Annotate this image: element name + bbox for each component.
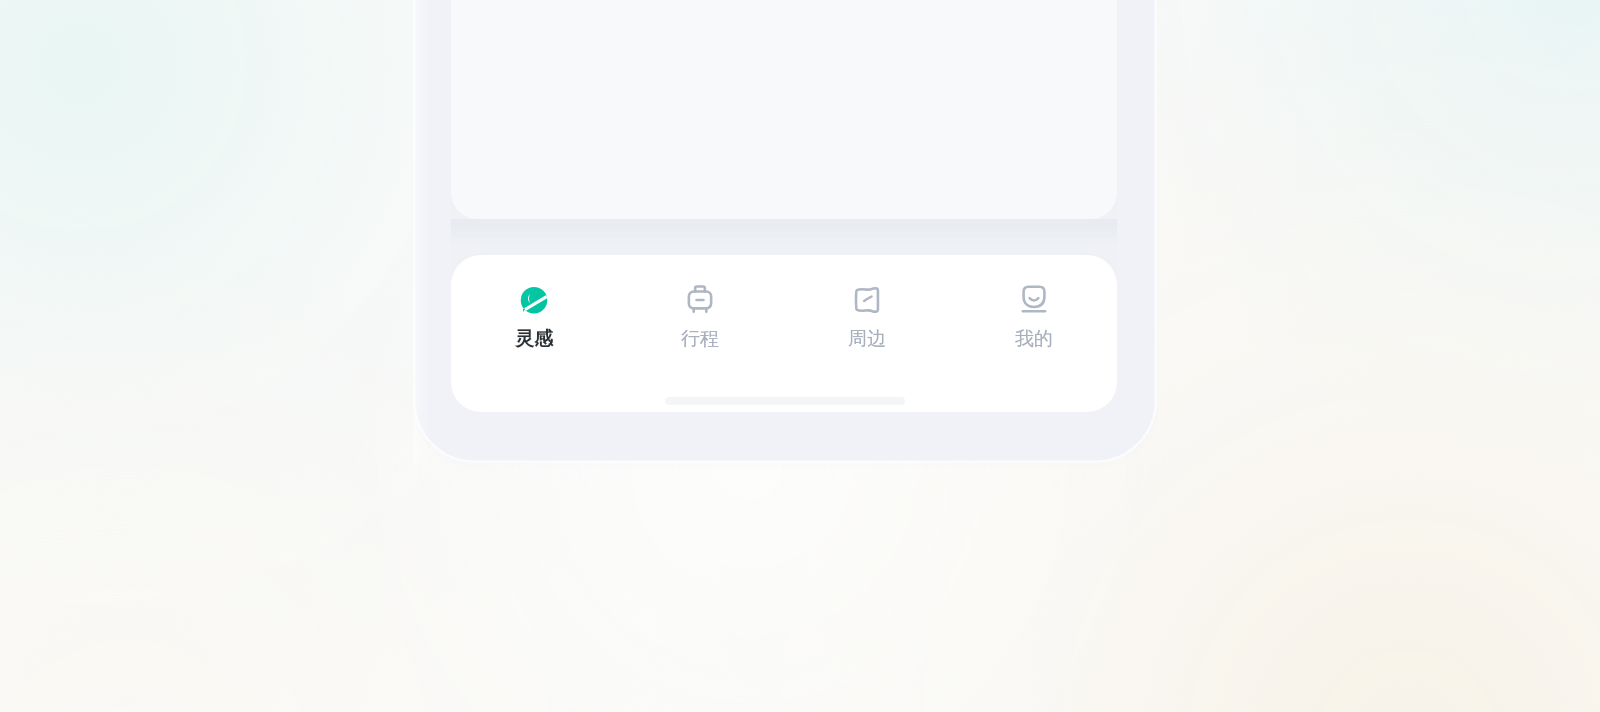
staticText: 行程 <box>681 327 719 351</box>
button[interactable]: 灵感 <box>451 279 617 397</box>
button[interactable]: 行程 <box>617 279 783 397</box>
button[interactable]: 我的 <box>950 279 1117 397</box>
staticText: 周边 <box>848 327 886 351</box>
button[interactable]: 周边 <box>783 279 950 397</box>
staticText: 我的 <box>1015 327 1053 351</box>
staticText: 灵感 <box>515 327 553 351</box>
